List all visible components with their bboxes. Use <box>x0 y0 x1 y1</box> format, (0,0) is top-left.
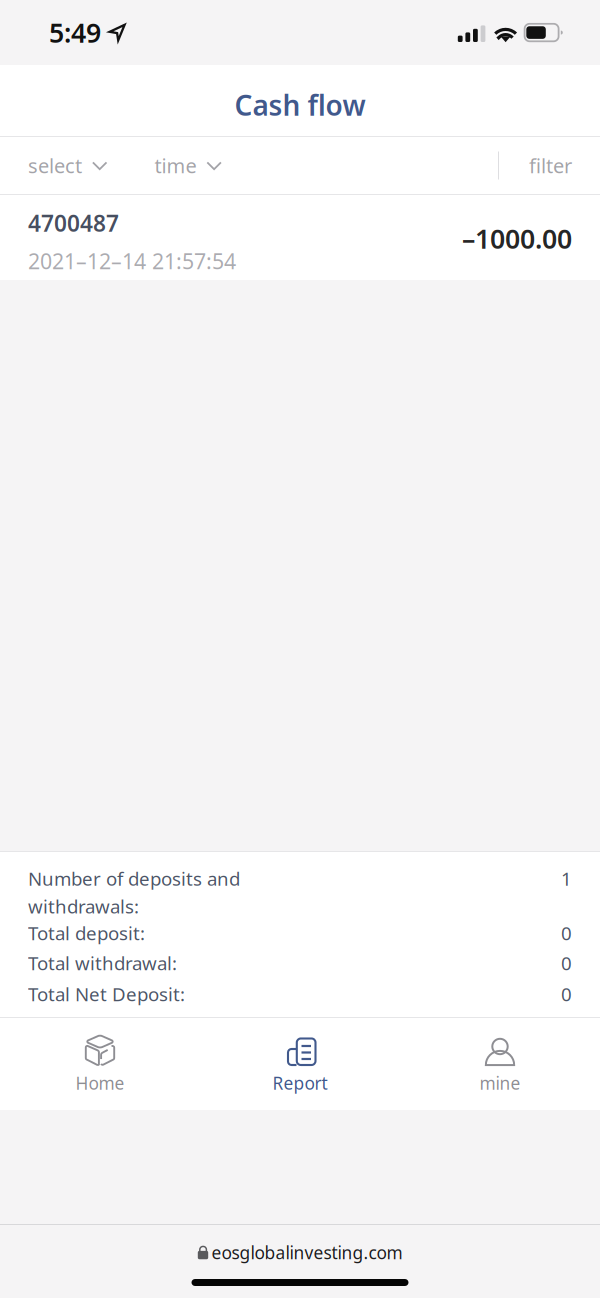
staticText: Cash flow <box>234 86 365 124</box>
staticText: select <box>28 152 82 179</box>
staticText: –1000.00 <box>462 221 572 256</box>
staticText: 5:49 <box>49 15 101 50</box>
button[interactable]: eosglobalinvesting.com <box>0 1225 600 1264</box>
staticText: mine <box>479 1071 520 1094</box>
staticText: eosglobalinvesting.com <box>211 1241 402 1264</box>
button[interactable]: Home <box>0 1020 200 1107</box>
staticText: Total Net Deposit: <box>28 982 185 1006</box>
button[interactable]: Report <box>200 1020 400 1107</box>
button[interactable]: select <box>0 137 121 194</box>
staticText: 2021–12–14 21:57:54 <box>28 247 236 275</box>
staticText: 1 <box>561 866 572 891</box>
staticText: Report <box>272 1071 327 1094</box>
staticText: 0 <box>561 982 572 1006</box>
button[interactable]: filter <box>499 137 600 194</box>
button[interactable]: mine <box>400 1020 600 1107</box>
staticText: withdrawals: <box>28 894 139 919</box>
staticText: Home <box>75 1071 124 1094</box>
staticText: Number of deposits and <box>28 866 240 891</box>
staticText: time <box>154 152 196 179</box>
staticText: Total withdrawal: <box>28 951 177 975</box>
staticText: 0 <box>561 921 572 945</box>
staticText: 0 <box>561 951 572 975</box>
staticText: 4700487 <box>28 208 119 238</box>
staticText: Total deposit: <box>28 921 145 945</box>
staticText: filter <box>529 152 572 179</box>
button[interactable]: 4700487 <box>0 195 600 280</box>
button[interactable]: time <box>121 137 236 194</box>
